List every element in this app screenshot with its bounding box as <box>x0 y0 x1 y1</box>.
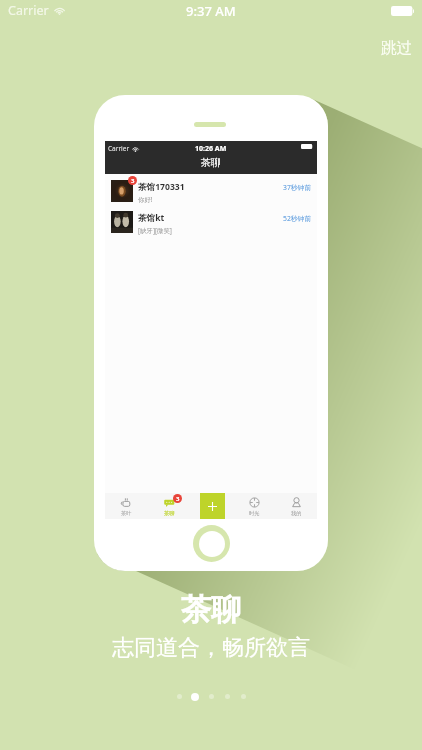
staticText: 3 <box>176 495 180 503</box>
staticText: 10:26 AM <box>195 144 227 154</box>
button[interactable]: 茶叶 <box>105 493 148 519</box>
staticText: 茶聊 <box>181 591 241 629</box>
button[interactable]: 3 <box>105 174 317 205</box>
button[interactable]: 3 <box>148 493 191 519</box>
staticText: 茶聊 <box>164 510 175 517</box>
button[interactable]: 我的 <box>275 493 317 519</box>
staticText: Carrier <box>108 144 130 153</box>
button[interactable]: 时光 <box>233 493 275 519</box>
button[interactable]: 跳过 <box>375 33 416 62</box>
button[interactable]: Add <box>200 493 225 519</box>
staticText: 37秒钟前 <box>283 183 312 192</box>
staticText: 9:37 AM <box>186 2 236 20</box>
staticText: 茶叶 <box>121 510 132 517</box>
button[interactable]: 茶馆kt <box>105 205 317 236</box>
staticText: 茶馆kt <box>138 212 165 224</box>
staticText: 52秒钟前 <box>283 214 312 223</box>
staticText: 我的 <box>291 510 302 517</box>
staticText: 时光 <box>249 510 260 517</box>
staticText: Carrier <box>8 2 49 19</box>
staticText: 志同道合，畅所欲言 <box>112 634 310 662</box>
staticText: 茶聊 <box>201 156 221 169</box>
staticText: [缺牙][微笑] <box>138 226 172 235</box>
staticText: 你好! <box>138 195 153 204</box>
staticText: 跳过 <box>381 38 412 57</box>
staticText: 3 <box>131 177 135 185</box>
staticText: 茶馆170331 <box>138 181 185 193</box>
